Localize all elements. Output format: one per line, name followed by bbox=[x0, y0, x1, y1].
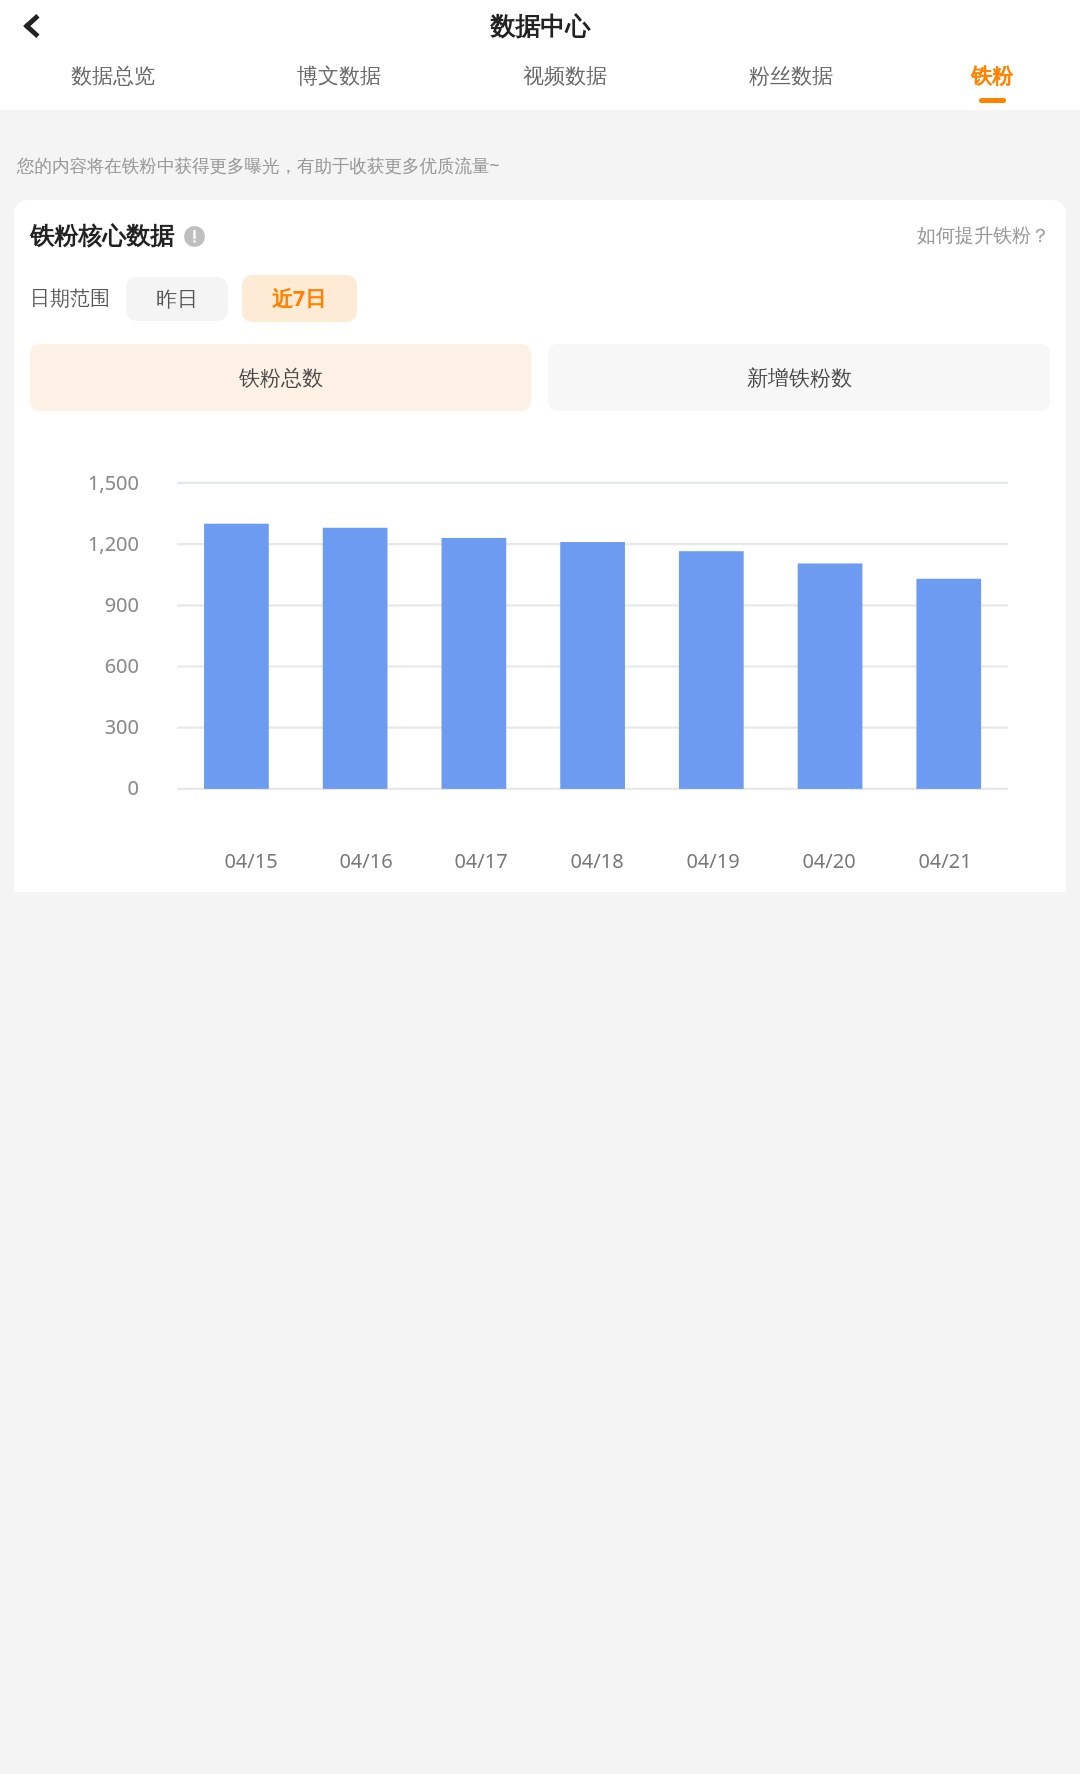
staticText: 04/20 bbox=[802, 847, 856, 874]
staticText: 600 bbox=[104, 652, 139, 679]
staticText: 1,500 bbox=[87, 469, 139, 496]
button[interactable]: 昨日 bbox=[126, 277, 228, 321]
button[interactable]: Back bbox=[8, 2, 56, 50]
staticText: 新增铁粉数 bbox=[747, 365, 852, 391]
staticText: 铁粉 bbox=[971, 63, 1013, 89]
staticText: 数据总览 bbox=[71, 63, 155, 89]
staticText: 昨日 bbox=[156, 286, 198, 312]
staticText: 04/17 bbox=[454, 847, 508, 874]
staticText: 0 bbox=[127, 774, 139, 801]
staticText: 04/16 bbox=[339, 847, 393, 874]
staticText: 如何提升铁粉？ bbox=[917, 224, 1050, 248]
staticText: 04/18 bbox=[570, 847, 624, 874]
button[interactable]: 数据总览 bbox=[0, 52, 226, 110]
staticText: 视频数据 bbox=[523, 63, 607, 89]
staticText: 铁粉核心数据 bbox=[30, 221, 174, 251]
staticText: 铁粉总数 bbox=[239, 365, 323, 391]
button[interactable]: 铁粉总数 bbox=[30, 344, 531, 411]
button[interactable]: Info bbox=[182, 224, 206, 248]
staticText: 04/21 bbox=[918, 847, 972, 874]
staticText: 900 bbox=[104, 591, 139, 618]
staticText: 1,200 bbox=[87, 530, 139, 557]
button[interactable]: 博文数据 bbox=[226, 52, 452, 110]
staticText: 数据中心 bbox=[490, 11, 590, 42]
staticText: 您的内容将在铁粉中获得更多曝光，有助于收获更多优质流量~ bbox=[17, 153, 500, 177]
staticText: 近7日 bbox=[272, 284, 327, 313]
staticText: 粉丝数据 bbox=[749, 63, 833, 89]
button[interactable]: 如何提升铁粉？ bbox=[917, 224, 1050, 248]
button[interactable]: 近7日 bbox=[242, 275, 357, 322]
button[interactable]: 粉丝数据 bbox=[678, 52, 904, 110]
button[interactable]: 新增铁粉数 bbox=[548, 344, 1050, 411]
staticText: 300 bbox=[104, 713, 139, 740]
button[interactable]: 铁粉 bbox=[904, 52, 1080, 110]
staticText: 04/15 bbox=[224, 847, 278, 874]
staticText: 日期范围 bbox=[30, 286, 110, 311]
staticText: 博文数据 bbox=[297, 63, 381, 89]
button[interactable]: 视频数据 bbox=[452, 52, 678, 110]
staticText: 04/19 bbox=[686, 847, 740, 874]
